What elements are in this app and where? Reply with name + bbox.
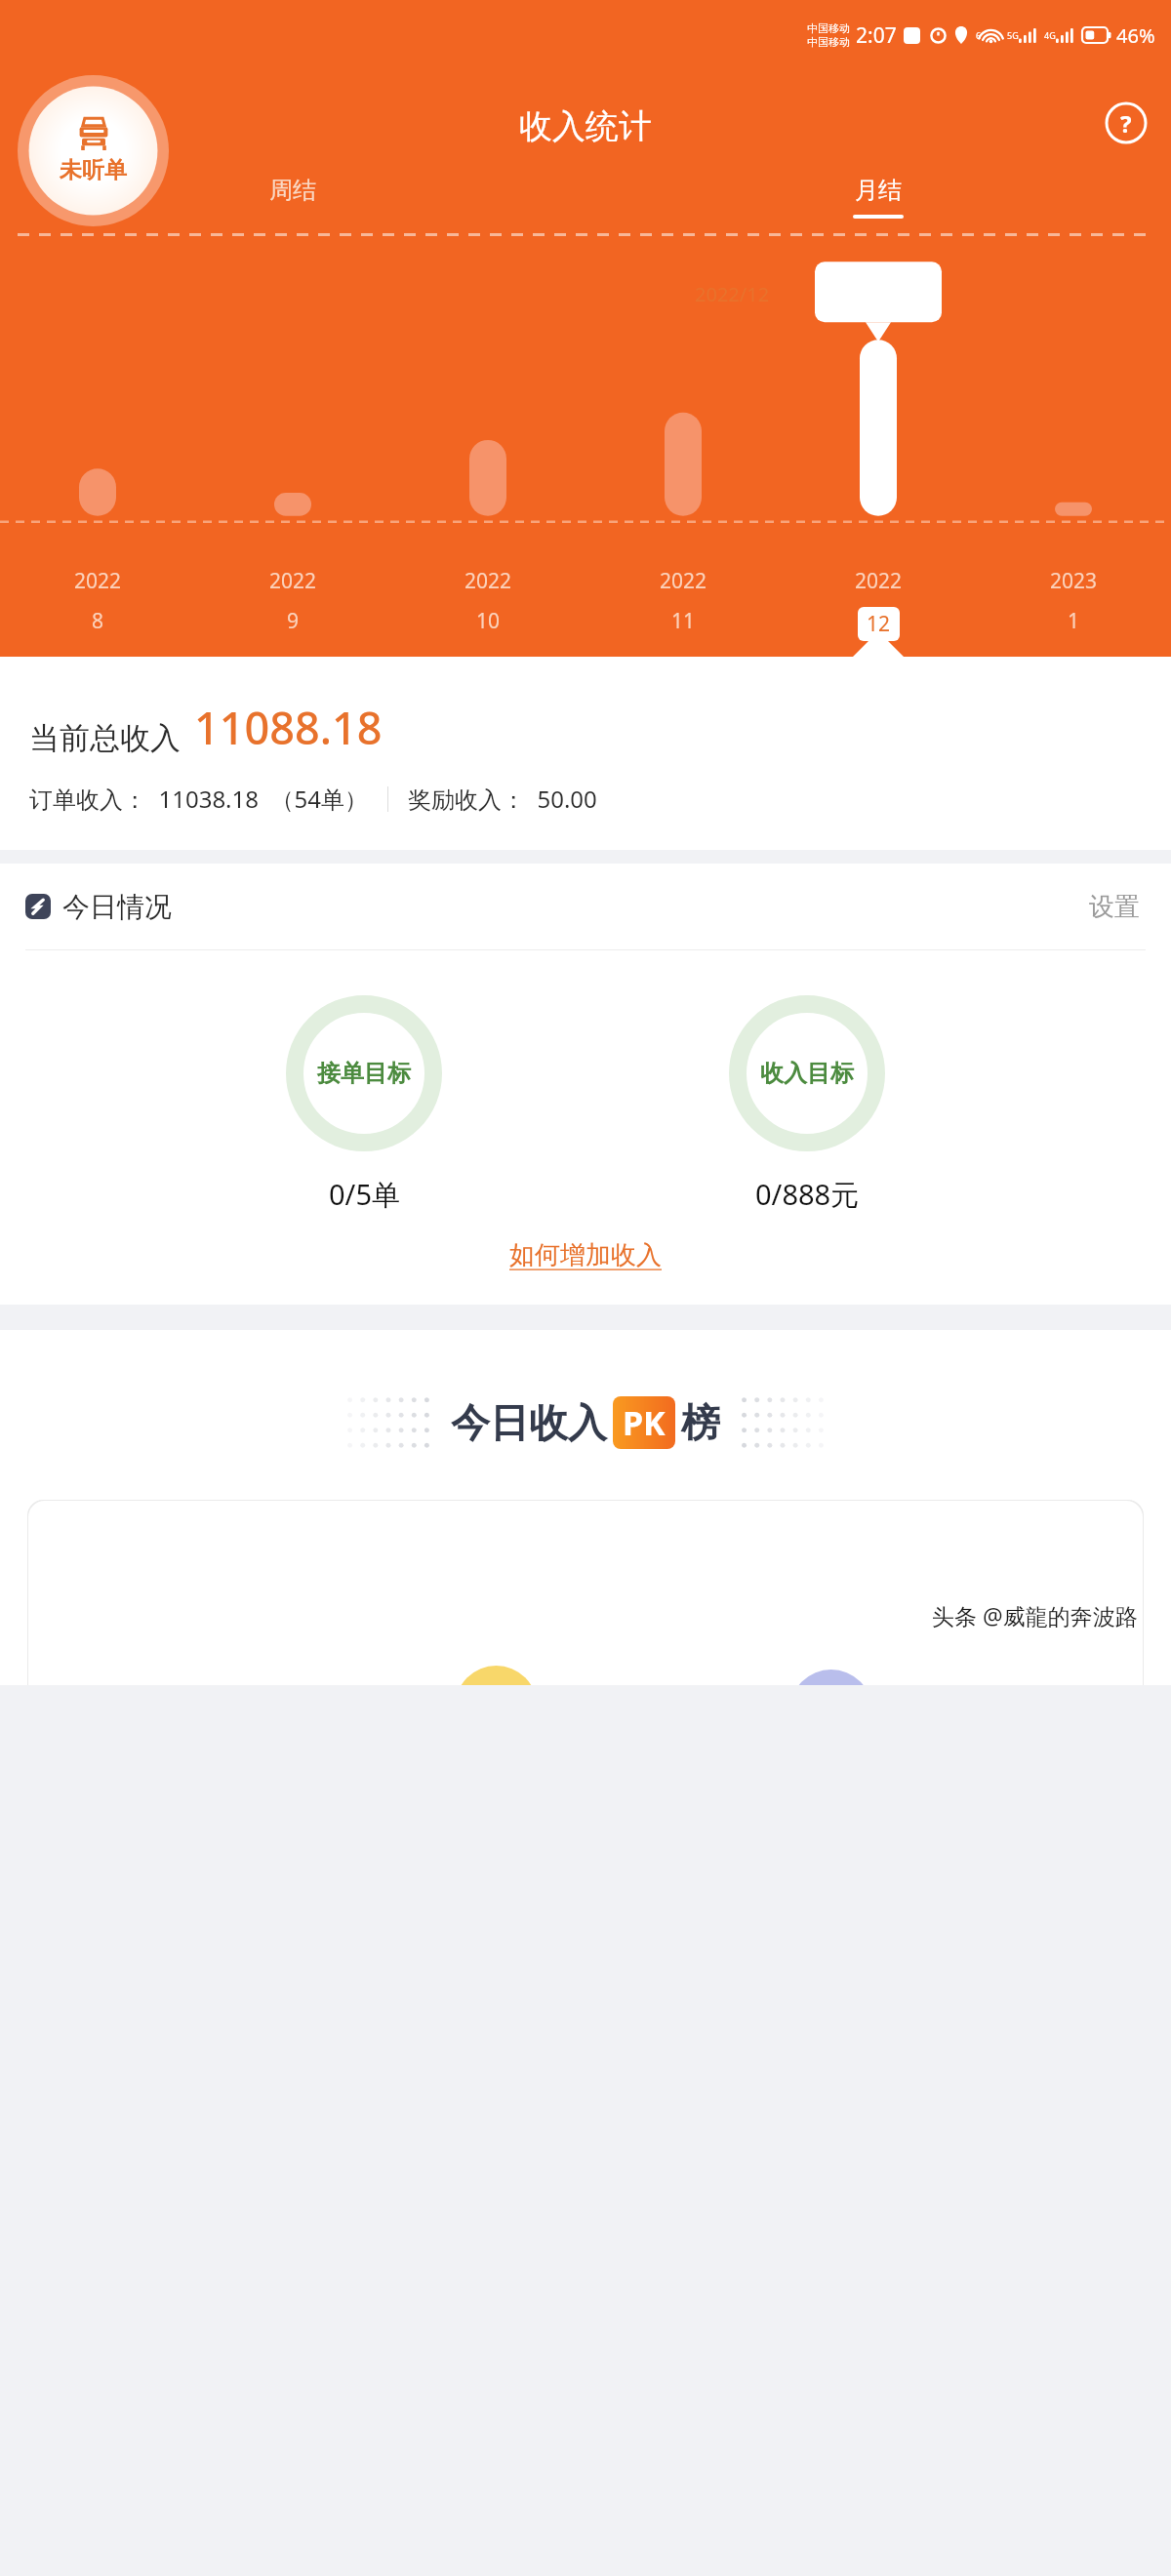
button[interactable]: 周结 xyxy=(0,176,585,219)
staticText: 中国移动 xyxy=(807,21,850,35)
staticText: 0/5单 xyxy=(329,1175,400,1214)
staticText: 11088.18 xyxy=(194,698,383,757)
staticText: 4G xyxy=(1044,29,1056,41)
staticText: 中国移动 xyxy=(807,35,850,49)
staticText: 10 xyxy=(476,607,501,635)
staticText: 2022 xyxy=(74,567,122,595)
staticText: 0/888元 xyxy=(755,1175,860,1214)
button[interactable]: 如何增加收入 xyxy=(0,1239,1171,1271)
staticText: 今日情况 xyxy=(62,890,172,924)
staticText: 周结 xyxy=(269,176,316,205)
staticText: 11 xyxy=(671,607,696,635)
button[interactable]: 未听单 xyxy=(18,75,169,226)
button[interactable]: 头条 @威龍的奔波路 xyxy=(27,1500,1144,1685)
staticText: 奖励收入： 50.00 xyxy=(408,783,597,815)
staticText: 月结 xyxy=(855,176,902,205)
staticText: 如何增加收入 xyxy=(509,1239,662,1271)
staticText: 2022 xyxy=(269,567,317,595)
staticText: 12 xyxy=(867,610,891,638)
staticText: 头条 @威龍的奔波路 xyxy=(932,1600,1138,1630)
staticText: 设置 xyxy=(1089,891,1140,923)
button[interactable]: 月结 xyxy=(585,176,1171,219)
staticText: 2022 xyxy=(855,567,903,595)
staticText: 9 xyxy=(287,607,300,635)
staticText: 订单收入： 11038.18 （54单） xyxy=(29,783,368,815)
staticText: 当前总收入 xyxy=(29,719,181,757)
staticText: 6 xyxy=(976,29,982,41)
staticText: 1 xyxy=(1068,607,1080,635)
staticText: 收入统计 xyxy=(519,105,652,147)
staticText: 2022/12 xyxy=(695,281,770,307)
staticText: 未听单 xyxy=(60,156,127,184)
staticText: PK xyxy=(623,1400,666,1445)
staticText: ? xyxy=(1120,107,1132,140)
staticText: 今日收入 xyxy=(451,1398,607,1447)
staticText: 46% xyxy=(1116,22,1155,49)
staticText: 2022 xyxy=(660,567,707,595)
staticText: 接单目标 xyxy=(317,1059,411,1088)
button[interactable]: Help xyxy=(1105,101,1148,144)
button[interactable]: 设置 xyxy=(1083,885,1146,929)
staticText: 2023 xyxy=(1050,567,1098,595)
staticText: 2:07 xyxy=(856,21,897,50)
staticText: 8 xyxy=(92,607,104,635)
staticText: 2022 xyxy=(464,567,512,595)
staticText: 榜 xyxy=(681,1398,720,1447)
staticText: 收入目标 xyxy=(760,1059,854,1088)
staticText: 5G xyxy=(1007,29,1019,41)
